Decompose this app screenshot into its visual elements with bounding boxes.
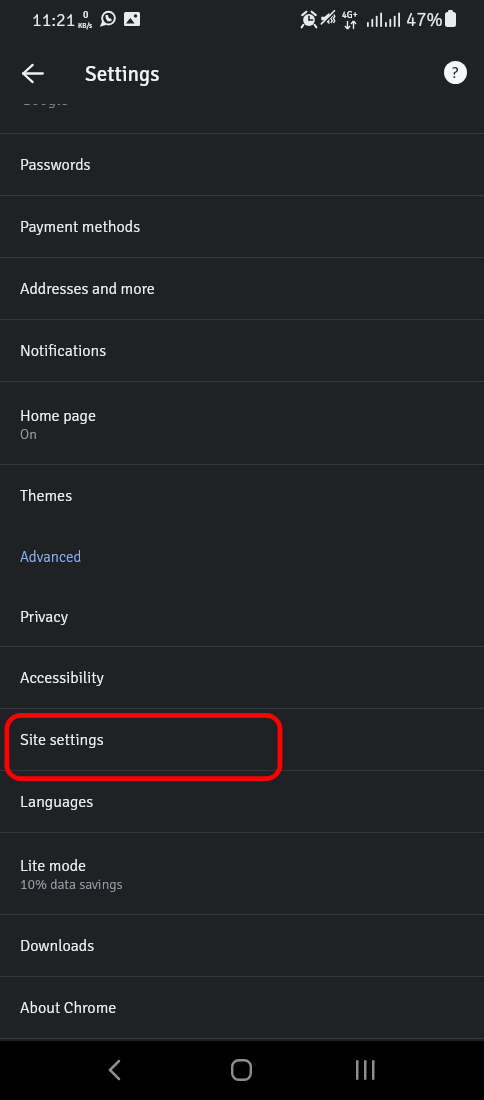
button[interactable]: Payment methods <box>0 196 484 257</box>
staticText: Languages <box>20 792 94 812</box>
staticText: Notifications <box>20 341 107 361</box>
staticText: 4G+ <box>342 10 358 21</box>
staticText: Addresses and more <box>20 279 155 299</box>
button[interactable]: Languages <box>0 771 484 832</box>
staticText: Privacy <box>20 607 69 627</box>
staticText: Downloads <box>20 936 95 956</box>
staticText: Site settings <box>20 730 104 750</box>
button[interactable]: Addresses and more <box>0 258 484 319</box>
staticText: About Chrome <box>20 998 117 1018</box>
button[interactable]: Lite mode <box>0 833 484 914</box>
staticText: 0 <box>83 9 89 21</box>
staticText: KB/s <box>78 21 93 30</box>
staticText: Payment methods <box>20 217 141 237</box>
staticText: ? <box>452 63 459 83</box>
staticText: Settings <box>85 61 160 87</box>
staticText: Advanced <box>20 548 82 566</box>
staticText: Home page <box>20 406 96 426</box>
staticText: On <box>20 426 37 443</box>
button[interactable]: Privacy <box>0 587 484 646</box>
button[interactable]: Help <box>435 52 475 92</box>
staticText: Passwords <box>20 155 91 175</box>
staticText: Google <box>21 104 69 110</box>
button[interactable]: Passwords <box>0 134 484 195</box>
button[interactable]: Back <box>90 1046 138 1094</box>
button[interactable]: Accessibility <box>0 647 484 708</box>
staticText: Accessibility <box>20 668 104 688</box>
button[interactable]: Home page <box>0 382 484 464</box>
button[interactable]: Themes <box>0 465 484 527</box>
staticText: 11:21 <box>32 9 76 31</box>
staticText: 47% <box>406 8 443 31</box>
button[interactable]: Site settings <box>0 709 484 770</box>
button[interactable]: Downloads <box>0 915 484 976</box>
staticText: Lite mode <box>20 856 87 876</box>
button[interactable]: Notifications <box>0 320 484 381</box>
button[interactable]: Recent apps <box>341 1046 389 1094</box>
button[interactable]: Back <box>8 49 56 97</box>
button[interactable]: About Chrome <box>0 977 484 1038</box>
staticText: 10% data savings <box>20 876 123 893</box>
staticText: Themes <box>20 486 73 506</box>
button[interactable]: Home <box>217 1046 265 1094</box>
